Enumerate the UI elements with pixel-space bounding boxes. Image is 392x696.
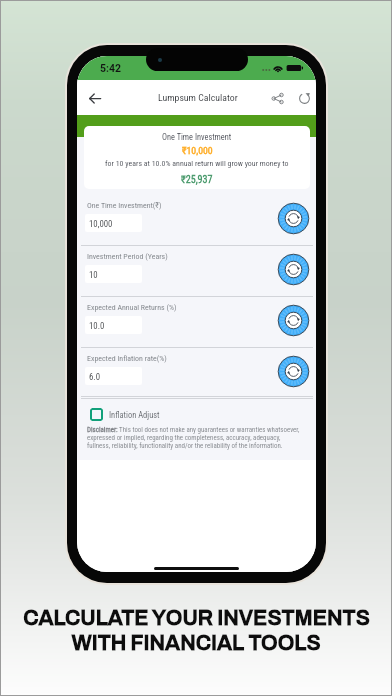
button[interactable]: 10,000 [85,214,142,232]
button[interactable]: 6.0 [85,367,142,385]
staticText: CALCULATE YOUR INVESTMENTS [23,606,370,629]
button[interactable]: 10.0 [85,316,142,334]
staticText: Lumpsum Calculator [158,92,238,103]
button[interactable]: Inflation Adjust [90,403,202,426]
staticText: Inflation Adjust [109,410,160,420]
staticText: 10 [89,270,98,280]
button[interactable]: Reset value [278,203,309,234]
button[interactable]: Share [265,86,289,110]
button[interactable]: Reset value [278,356,309,387]
staticText: for 10 years at 10.0% annual return will… [105,159,289,168]
staticText: Expected Inflation rate(%) [87,354,167,363]
button[interactable]: Reset value [278,305,309,336]
staticText: 5:42 [100,62,122,74]
staticText: One Time Investment [162,132,232,142]
staticText: Expected Annual Returns (%) [87,303,177,312]
staticText: 6.0 [89,372,101,382]
button[interactable]: Reset value [278,254,309,285]
button[interactable]: 10 [85,265,142,283]
button[interactable]: Back [83,86,107,110]
staticText: 10.0 [89,321,105,331]
staticText: ₹10,000 [182,145,213,156]
staticText: 10,000 [89,219,113,229]
staticText: Disclaimer: This tool does not make any … [87,426,301,450]
button[interactable]: Refresh [292,86,316,110]
staticText: ₹25,937 [181,174,213,186]
staticText: One Time Investment(₹) [87,201,162,210]
staticText: WITH FINANCIAL TOOLS [71,631,321,654]
staticText: Investment Period (Years) [87,252,168,261]
